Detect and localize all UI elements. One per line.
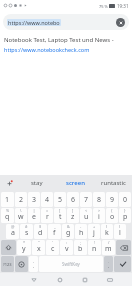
button[interactable]: : — [60, 240, 73, 255]
staticText: a — [11, 228, 15, 238]
button[interactable]: Settings — [15, 256, 28, 272]
button[interactable]: ?123 — [1, 256, 14, 272]
staticText: ] — [72, 208, 74, 213]
staticText: | — [33, 208, 36, 213]
staticText: m — [105, 244, 112, 254]
button[interactable]: Space — [39, 256, 103, 272]
staticText: y — [22, 244, 26, 254]
staticText: o — [110, 212, 115, 222]
button[interactable]: https://www.notebookcheck.com — [3, 14, 129, 30]
button[interactable]: = — [41, 208, 53, 223]
staticText: \ — [20, 208, 22, 213]
staticText: 0 — [123, 195, 128, 205]
button[interactable]: & — [62, 224, 74, 239]
button[interactable]: ( — [101, 224, 113, 239]
staticText: r — [46, 212, 49, 222]
staticText: $ — [39, 224, 42, 229]
button[interactable]: % — [1, 208, 14, 223]
staticText: SwiftKey — [62, 261, 80, 267]
staticText: https://www.notebookcheck.com — [4, 46, 90, 53]
staticText: w — [18, 212, 24, 222]
button[interactable]: stay — [18, 175, 56, 191]
button[interactable]: 7 — [80, 192, 92, 207]
button[interactable]: 4 — [41, 192, 53, 207]
staticText: " — [38, 240, 40, 245]
staticText: 9 — [110, 195, 115, 205]
staticText: * — [23, 240, 26, 245]
button[interactable]: # — [20, 224, 33, 239]
button[interactable]: \ — [15, 208, 27, 223]
staticText: g — [66, 228, 71, 238]
staticText: i — [98, 212, 100, 222]
button[interactable]: < — [80, 208, 92, 223]
staticText: _ — [54, 224, 56, 229]
staticText: 3 — [32, 195, 37, 205]
button[interactable]: Go — [114, 256, 131, 272]
button[interactable]: Recents — [72, 273, 97, 286]
staticText: n — [92, 244, 97, 254]
staticText: s — [25, 228, 29, 238]
button[interactable]: Shift — [1, 240, 16, 255]
button[interactable]: > — [93, 208, 105, 223]
staticText: [ — [59, 208, 61, 213]
button[interactable]: Backspace — [116, 240, 131, 255]
staticText: ?123 — [3, 262, 12, 267]
button[interactable]: + — [88, 224, 100, 239]
staticText: + — [93, 224, 96, 229]
button[interactable]: Notebook Test, Laptop Test und News - No… — [0, 33, 132, 53]
button[interactable]: [ — [54, 208, 66, 223]
button[interactable]: ) — [114, 224, 126, 239]
button[interactable]: @ — [6, 224, 19, 239]
button[interactable]: , — [104, 256, 113, 272]
staticText: < — [85, 208, 88, 213]
staticText: screen — [66, 179, 85, 187]
button[interactable]: 1 — [1, 192, 14, 207]
button[interactable]: ' — [46, 240, 59, 255]
staticText: t — [59, 212, 62, 222]
button[interactable]: - — [75, 224, 87, 239]
staticText: 4 — [45, 195, 50, 205]
button[interactable]: 5 — [54, 192, 66, 207]
button[interactable]: { — [106, 208, 118, 223]
button[interactable]: 3 — [28, 192, 40, 207]
button[interactable]: Emoji — [0, 175, 18, 191]
button[interactable]: ! — [88, 240, 101, 255]
button[interactable]: " — [32, 240, 45, 255]
staticText: : — [66, 240, 68, 245]
button[interactable]: Keyboard — [97, 273, 122, 286]
button[interactable]: ; — [74, 240, 87, 255]
button[interactable]: runtastic — [94, 175, 132, 191]
button[interactable]: 9 — [106, 192, 118, 207]
button[interactable]: ] — [67, 208, 79, 223]
staticText: # — [25, 224, 28, 229]
button[interactable]: | — [28, 208, 40, 223]
staticText: stay — [31, 179, 43, 187]
button[interactable]: Clear — [116, 18, 125, 27]
staticText: . — [108, 263, 110, 270]
button[interactable]: , — [29, 256, 38, 272]
button[interactable]: 8 — [93, 192, 105, 207]
staticText: b — [78, 244, 83, 254]
button[interactable]: } — [119, 208, 131, 223]
staticText: l — [119, 228, 121, 238]
button[interactable]: Home — [47, 273, 72, 286]
button[interactable]: 2 — [15, 192, 27, 207]
button[interactable]: Back — [21, 273, 47, 286]
staticText: runtastic — [101, 179, 126, 187]
button[interactable]: 0 — [119, 192, 131, 207]
button[interactable]: screen — [56, 175, 94, 191]
staticText: 1 — [5, 195, 10, 205]
staticText: e — [32, 212, 36, 222]
staticText: . — [33, 263, 35, 270]
button[interactable]: _ — [48, 224, 61, 239]
staticText: 75 % — [99, 4, 108, 9]
button[interactable]: 6 — [67, 192, 79, 207]
staticText: 8 — [97, 195, 102, 205]
staticText: 6 — [71, 195, 76, 205]
staticText: ! — [94, 240, 96, 245]
staticText: ; — [80, 240, 82, 245]
button[interactable]: / — [102, 240, 115, 255]
staticText: v — [65, 244, 69, 254]
button[interactable]: * — [17, 240, 31, 255]
button[interactable]: $ — [34, 224, 47, 239]
